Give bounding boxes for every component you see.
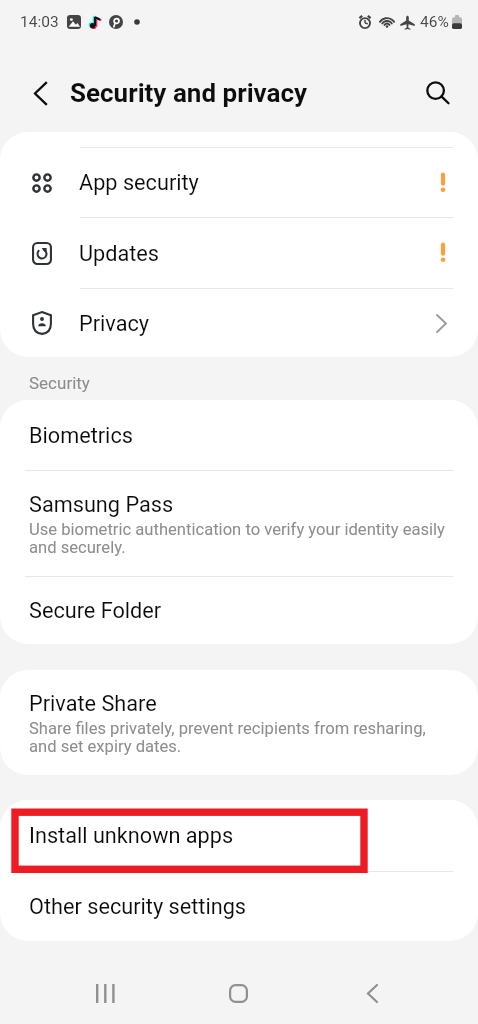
button[interactable]: Privacy: [0, 289, 478, 357]
button[interactable]: App security: [0, 148, 478, 217]
button[interactable]: Recent apps: [76, 965, 133, 1022]
staticText: Other security settings: [29, 894, 247, 919]
staticText: Secure Folder: [29, 598, 162, 623]
button[interactable]: Install unknown apps: [0, 800, 478, 871]
staticText: Updates: [79, 241, 160, 266]
staticText: Security: [29, 373, 90, 393]
staticText: App security: [79, 170, 199, 195]
staticText: Security and privacy: [70, 78, 308, 108]
button[interactable]: Home: [210, 965, 267, 1022]
staticText: Privacy: [79, 311, 150, 336]
button[interactable]: Biometrics: [0, 400, 478, 470]
button[interactable]: Navigate up: [21, 74, 59, 112]
button[interactable]: Search: [420, 75, 458, 113]
staticText: Private Share: [29, 691, 157, 716]
staticText: Samsung Pass: [29, 492, 174, 517]
button[interactable]: Private Share: [0, 670, 478, 775]
button[interactable]: Updates: [0, 218, 478, 288]
button[interactable]: Secure Folder: [0, 577, 478, 644]
staticText: Use biometric authentication to verify y…: [29, 520, 445, 557]
staticText: Share files privately, prevent recipient…: [29, 719, 445, 756]
button[interactable]: Other security settings: [0, 872, 478, 941]
staticText: Biometrics: [29, 423, 133, 448]
staticText: 46%: [420, 13, 449, 31]
staticText: 14:03: [20, 13, 59, 31]
staticText: Install unknown apps: [29, 823, 234, 848]
button[interactable]: Back: [344, 965, 401, 1022]
button[interactable]: Samsung Pass: [0, 471, 478, 576]
